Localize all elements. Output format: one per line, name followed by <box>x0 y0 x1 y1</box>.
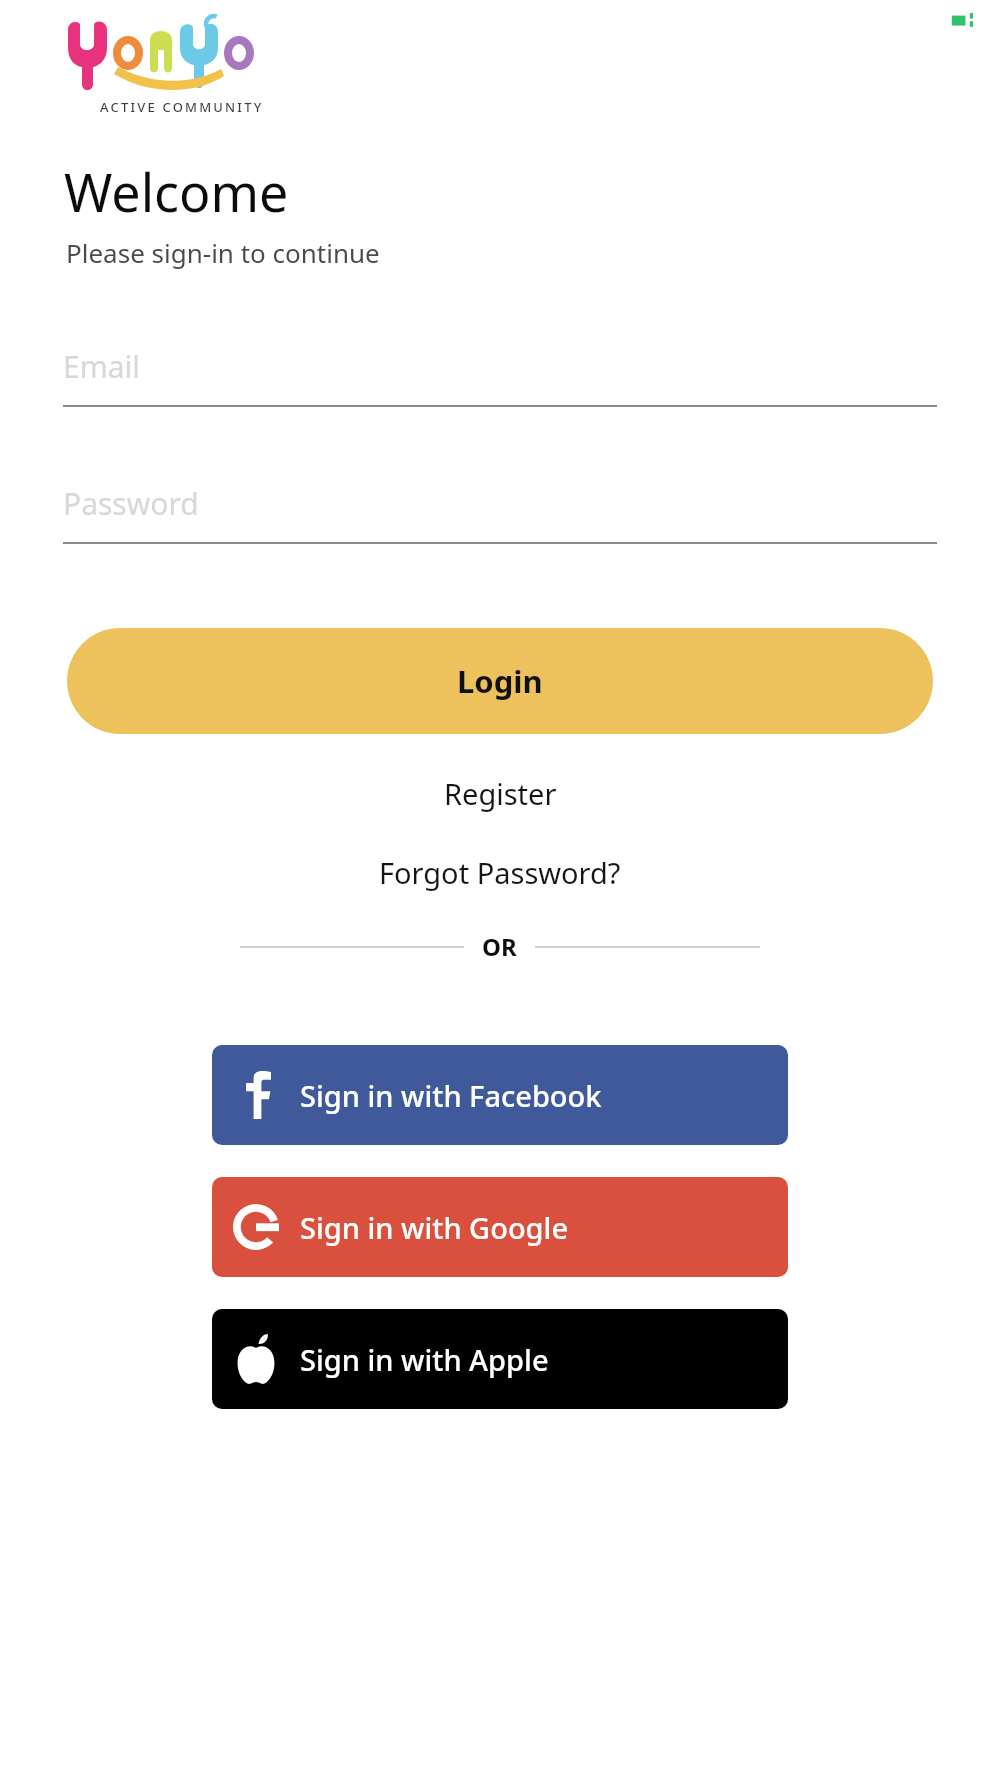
button[interactable]: Apple <box>212 1309 788 1409</box>
button[interactable]: Facebook <box>212 1045 788 1145</box>
other: Google <box>233 1204 279 1250</box>
button[interactable]: Register <box>0 762 1000 825</box>
staticText: Please sign-in to continue <box>66 235 380 270</box>
staticText: Sign in with Facebook <box>300 1076 602 1115</box>
staticText: Welcome <box>64 156 289 227</box>
staticText: ACTIVE COMMUNITY <box>100 98 264 116</box>
staticText: Register <box>444 774 557 813</box>
other: Apple <box>235 1334 277 1384</box>
other: Yoayo logo <box>66 14 254 96</box>
staticText: Login <box>457 660 543 702</box>
staticText: Sign in with Google <box>300 1208 569 1247</box>
button[interactable]: Password <box>63 483 937 544</box>
button[interactable]: Forgot Password? <box>0 841 1000 904</box>
button[interactable]: Login <box>67 628 933 734</box>
staticText: Sign in with Apple <box>300 1340 549 1379</box>
button[interactable]: Email <box>63 346 937 407</box>
other: Facebook <box>241 1071 271 1119</box>
staticText: Password <box>63 483 199 524</box>
button[interactable]: Google <box>212 1177 788 1277</box>
staticText: Email <box>63 346 141 387</box>
staticText: OR <box>482 930 517 963</box>
staticText: Forgot Password? <box>379 853 621 892</box>
